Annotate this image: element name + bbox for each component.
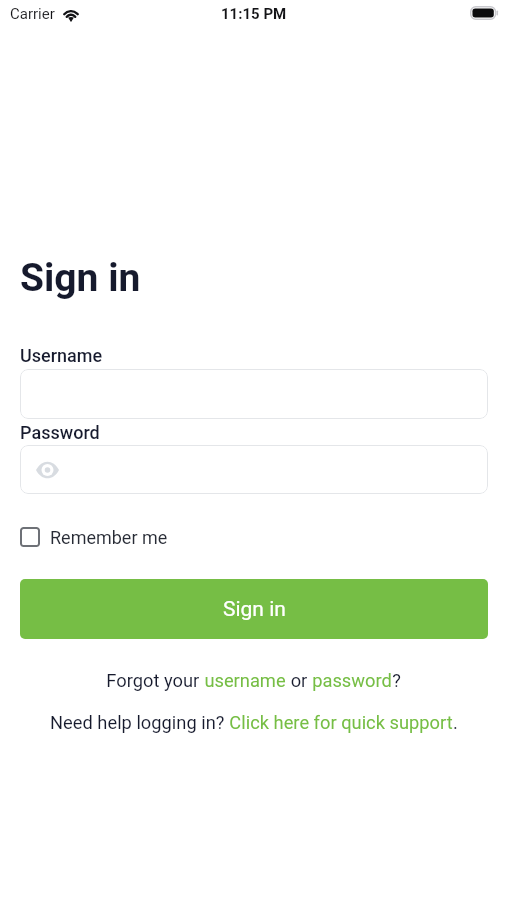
staticText: Sign in [20,255,141,301]
staticText: . [453,712,458,733]
staticText: ? [392,670,401,691]
button[interactable]: Sign in [20,579,488,639]
button[interactable]: password [312,670,392,691]
staticText: Forgot your [106,670,204,691]
button[interactable]: Show password [34,456,61,483]
staticText: Need help logging in? [50,712,229,733]
staticText: Sign in [223,597,286,622]
button[interactable]: Password field [20,445,488,494]
staticText: or [286,670,312,691]
staticText: Carrier [10,5,55,23]
staticText: Remember me [50,527,168,548]
button[interactable]: Click here for quick support [229,712,453,733]
staticText: Password [20,422,100,443]
button[interactable]: Username field [20,369,488,419]
staticText: Username [20,345,103,366]
button[interactable]: Remember me [20,524,168,550]
staticText: 11:15 PM [221,5,287,23]
button[interactable]: username [204,670,286,691]
